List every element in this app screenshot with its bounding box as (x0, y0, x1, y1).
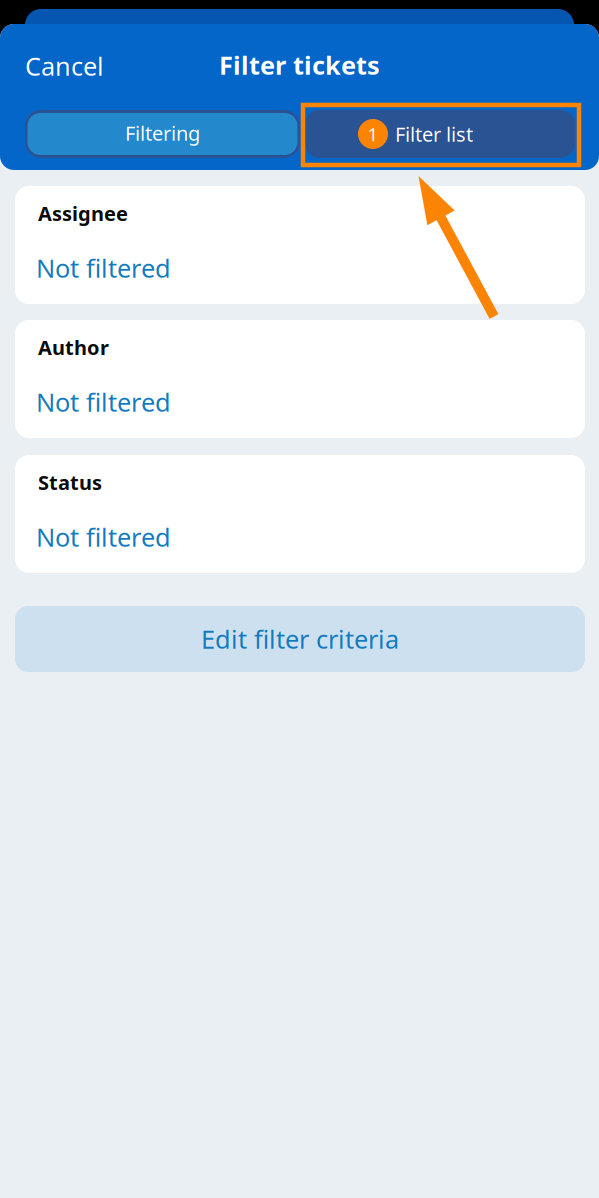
staticText: Not filtered (36, 385, 171, 419)
staticText: Filter tickets (219, 48, 380, 82)
staticText: 1 (367, 122, 378, 146)
button[interactable]: Cancel (0, 42, 125, 90)
staticText: Filtering (125, 120, 200, 146)
staticText: Filter list (395, 121, 473, 147)
staticText: Edit filter criteria (201, 622, 399, 656)
staticText: Author (38, 334, 109, 361)
staticText: Assignee (38, 200, 128, 227)
staticText: Cancel (25, 49, 104, 83)
staticText: Not filtered (36, 520, 171, 554)
staticText: Not filtered (36, 251, 171, 285)
staticText: Status (38, 469, 102, 496)
button[interactable]: Edit filter criteria (15, 606, 585, 672)
button[interactable]: Filtering (25, 110, 300, 158)
button[interactable]: Author (15, 320, 585, 438)
button[interactable]: Assignee (15, 186, 585, 304)
button[interactable]: Status (15, 455, 585, 573)
button[interactable]: 1 (305, 110, 575, 158)
